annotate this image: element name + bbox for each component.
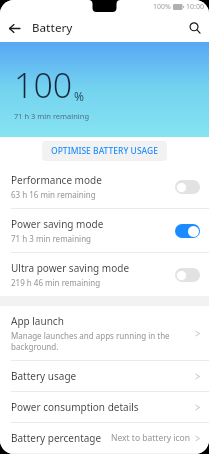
button[interactable]: Toggle on [175,224,200,238]
button[interactable]: Toggle off [175,268,200,282]
staticText: 71 h 3 min remaining [14,111,90,121]
button[interactable]: OPTIMISE BATTERY USAGE [42,141,167,161]
staticText: Battery [32,20,73,36]
staticText: Battery percentage [11,431,102,445]
staticText: App launch [11,314,64,328]
staticText: Battery usage [11,369,77,383]
staticText: 219 h 46 min remaining [11,277,101,288]
button[interactable]: Battery usage [0,361,209,391]
staticText: Next to battery icon [111,432,190,444]
staticText: % [74,88,84,104]
staticText: 10:00 [186,2,204,12]
button[interactable]: Power saving mode [0,209,209,252]
staticText: 63 h 16 min remaining [11,189,96,200]
button[interactable]: Back [0,18,29,39]
button[interactable]: Search [181,18,209,38]
staticText: Performance mode [11,173,102,187]
staticText: Power consumption details [11,400,139,414]
staticText: 100 [14,62,73,108]
button[interactable]: App launch [0,306,209,360]
staticText: Manage launches and apps running in the … [11,330,170,352]
button[interactable]: Toggle off [175,180,200,194]
button[interactable]: Ultra power saving mode [0,253,209,296]
button[interactable]: Battery percentage [0,423,209,453]
staticText: OPTIMISE BATTERY USAGE [51,145,158,157]
staticText: Power saving mode [11,217,104,231]
button[interactable]: Power consumption details [0,392,209,422]
staticText: Ultra power saving mode [11,261,130,275]
staticText: 100% [153,2,171,12]
button[interactable]: Performance mode [0,165,209,208]
staticText: 71 h 3 min remaining [11,233,92,244]
